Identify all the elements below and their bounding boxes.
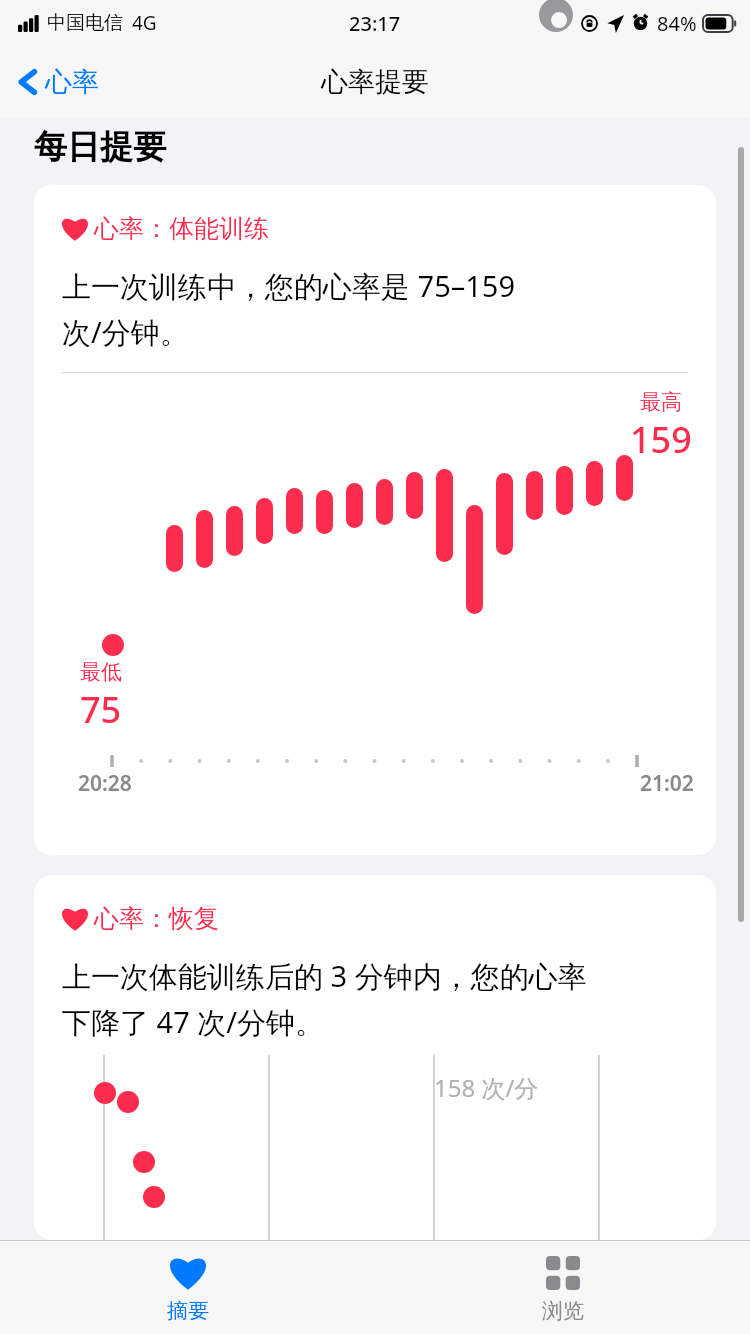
staticText: 75 [80,685,122,734]
staticText: 心率：恢复 [94,903,219,934]
staticText: 摘要 [167,1298,209,1324]
other: 浏览 [546,1256,580,1290]
staticText: 中国电信 [47,11,123,35]
button[interactable]: 心率：体能训练 [34,185,716,855]
staticText: 84% [657,10,697,37]
staticText: 上一次训练中，您的心率是 75–159 次/分钟。 [62,266,515,351]
staticText: 浏览 [542,1298,584,1324]
staticText: 23:17 [349,10,401,37]
staticText: 159 [630,415,692,464]
staticText: 21:02 [640,769,694,798]
staticText: 最高 [640,389,682,415]
staticText: 最低 [80,659,122,685]
staticText: 心率：体能训练 [94,213,269,244]
other: 摘要 [170,1256,206,1290]
staticText: 每日提要 [34,126,166,168]
button[interactable]: 心率：恢复 [34,875,716,1240]
staticText: 心率 [45,65,99,99]
staticText: 心率提要 [321,65,429,99]
staticText: 上一次体能训练后的 3 分钟内，您的心率 下降了 47 次/分钟。 [62,956,587,1041]
button[interactable]: 心率 [14,59,103,105]
staticText: 4G [132,10,157,36]
button[interactable]: 摘要 [0,1241,375,1334]
button[interactable]: 浏览 [375,1241,750,1334]
staticText: 20:28 [78,769,132,798]
staticText: 158 次/分 [434,1071,539,1104]
